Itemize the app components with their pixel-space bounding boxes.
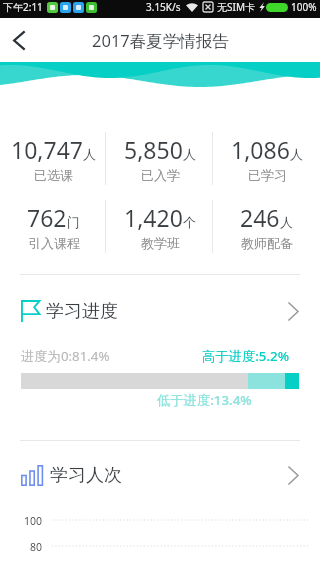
staticText: 10,747: [11, 134, 83, 165]
staticText: 门: [67, 214, 80, 230]
staticText: 人: [280, 214, 293, 230]
staticText: 246: [240, 202, 280, 233]
staticText: 1,086: [231, 134, 290, 165]
staticText: 个: [183, 214, 196, 230]
staticText: 学习人次: [50, 464, 122, 487]
staticText: 已入学: [141, 167, 180, 183]
staticText: 已学习: [248, 167, 287, 183]
button[interactable]: 学习人次: [0, 450, 320, 494]
staticText: 下午2:11: [3, 0, 43, 14]
staticText: 80: [30, 540, 43, 552]
staticText: 100: [24, 514, 43, 526]
staticText: 教师配备: [241, 235, 293, 251]
staticText: 进度为0:81.4%: [21, 347, 110, 365]
staticText: 无SIM卡: [217, 0, 255, 14]
button[interactable]: 学习进度: [0, 286, 320, 330]
staticText: 低于进度:13.4%: [157, 391, 252, 409]
staticText: 已选课: [34, 167, 73, 183]
staticText: 100%: [291, 0, 317, 14]
staticText: 5,850: [124, 134, 183, 165]
staticText: 人: [83, 146, 96, 162]
staticText: 1,420: [124, 202, 183, 233]
staticText: 人: [290, 146, 303, 162]
staticText: 2017春夏学情报告: [92, 29, 229, 52]
button[interactable]: Back: [0, 18, 38, 62]
staticText: 人: [183, 146, 196, 162]
staticText: 高于进度:5.2%: [202, 347, 289, 365]
staticText: 3.15K/s: [146, 0, 181, 14]
staticText: 学习进度: [46, 300, 118, 323]
staticText: 引入课程: [28, 235, 80, 251]
staticText: 762: [27, 202, 67, 233]
staticText: 教学班: [141, 235, 180, 251]
